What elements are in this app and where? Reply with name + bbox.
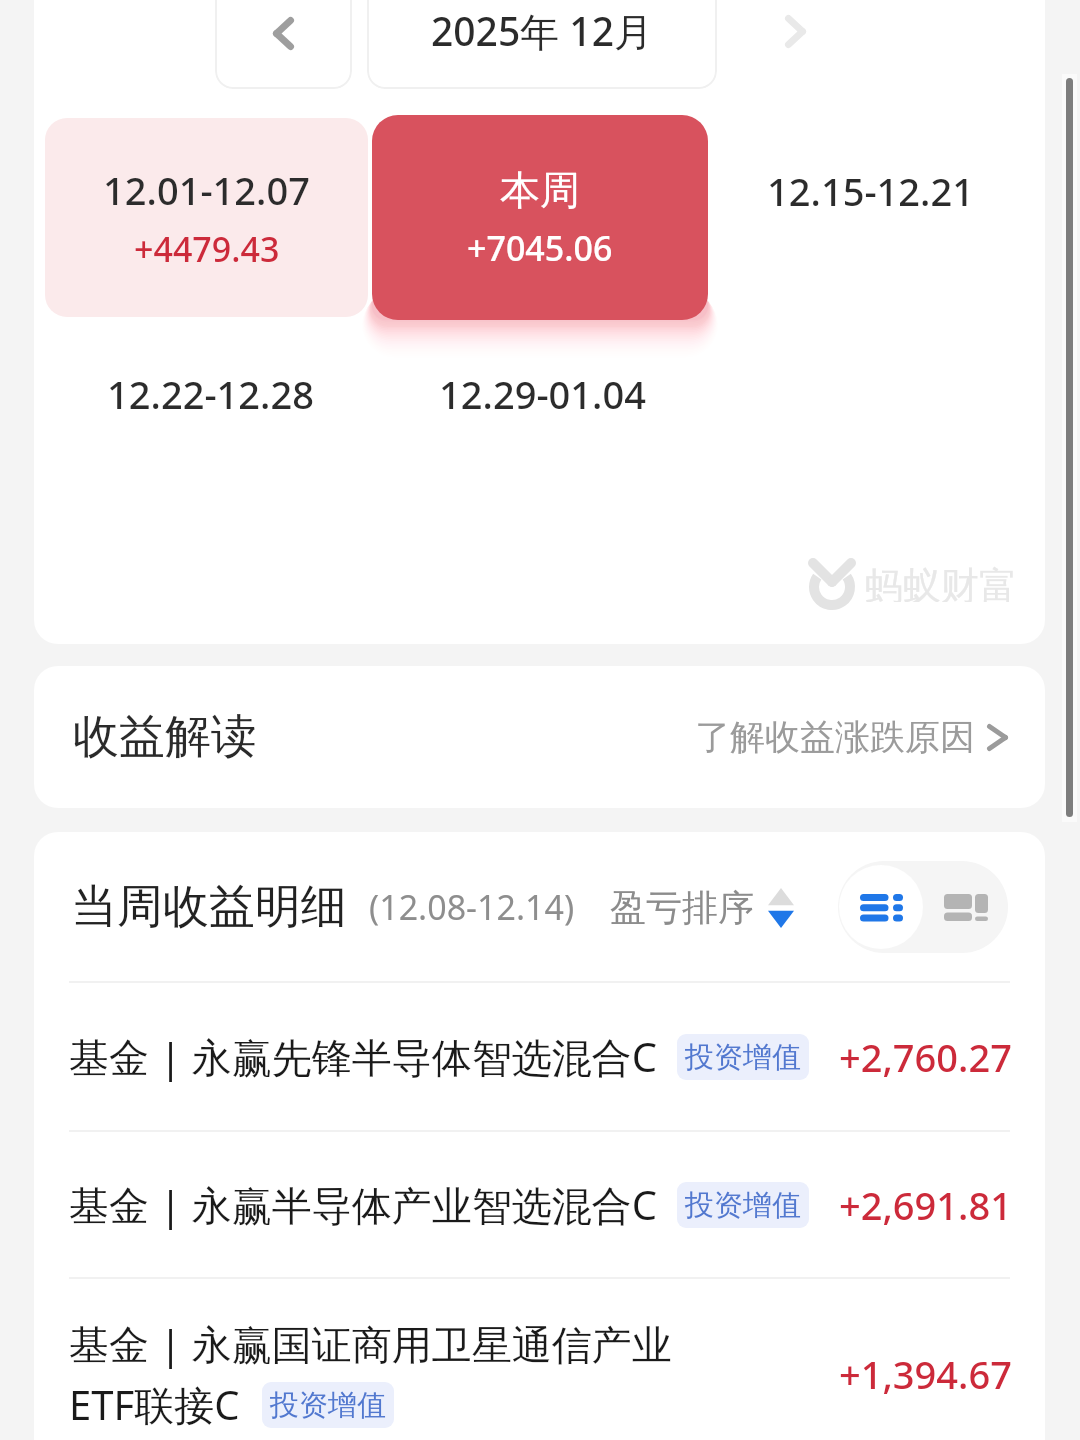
staticText: 盈亏排序 [610, 885, 754, 930]
staticText: 基金 | 永赢半导体产业智选混合C [69, 1177, 658, 1232]
staticText: 基金 | 永赢国证商用卫星通信产业 [69, 1316, 672, 1371]
staticText: ETF联接C [69, 1377, 240, 1432]
staticText: (12.08-12.14) [369, 884, 575, 930]
staticText: 投资增值 [685, 1187, 801, 1224]
button[interactable]: 本周 [372, 115, 708, 320]
button[interactable]: 基金 | 永赢先锋半导体智选混合C [34, 983, 1045, 1130]
button[interactable]: List view [839, 865, 923, 949]
button[interactable]: Next month [726, 0, 864, 77]
button[interactable]: 12.29-01.04 [372, 344, 712, 444]
staticText: 了解收益涨跌原因 [695, 715, 975, 759]
staticText: 基金 | 永赢先锋半导体智选混合C [69, 1029, 658, 1084]
button[interactable]: 12.01-12.07 [45, 118, 368, 317]
button[interactable]: 基金 | 永赢半导体产业智选混合C [34, 1132, 1045, 1277]
staticText: 投资增值 [270, 1387, 386, 1424]
button[interactable]: 12.22-12.28 [40, 344, 380, 444]
staticText: +1,394.67 [839, 1348, 1012, 1400]
staticText: 当周收益明细 [71, 878, 347, 936]
button[interactable]: 收益解读 [34, 666, 1045, 808]
staticText: 12.29-01.04 [439, 368, 646, 420]
staticText: 蚂蚁财富 [865, 562, 1015, 602]
staticText: +2,760.27 [839, 1031, 1012, 1083]
button[interactable]: 12.15-12.21 [700, 141, 1040, 241]
staticText: +7045.06 [467, 225, 613, 271]
staticText: 2025年 12月 [431, 4, 653, 57]
staticText: +4479.43 [134, 226, 280, 272]
staticText: 收益解读 [73, 708, 257, 766]
button[interactable]: 盈亏排序 [610, 885, 794, 930]
button[interactable]: 基金 | 永赢国证商用卫星通信产业 [34, 1276, 1045, 1440]
button[interactable]: 2025年 12月 [367, 0, 717, 89]
button[interactable]: Grid view [924, 861, 1008, 953]
button[interactable]: Previous month [215, 0, 352, 89]
staticText: 12.01-12.07 [103, 164, 310, 216]
staticText: +2,691.81 [839, 1179, 1012, 1231]
staticText: 12.15-12.21 [767, 165, 974, 217]
staticText: 12.22-12.28 [107, 368, 314, 420]
staticText: 投资增值 [685, 1039, 801, 1076]
staticText: 本周 [500, 165, 580, 215]
